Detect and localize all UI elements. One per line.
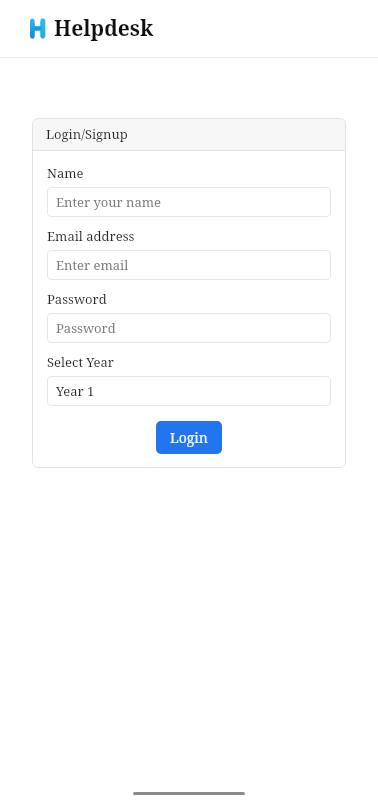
button[interactable]: Select Year (47, 376, 331, 406)
button[interactable]: Email input (47, 250, 331, 280)
staticText: Password (47, 290, 107, 308)
staticText: Login (170, 428, 208, 447)
staticText: Login/Signup (46, 125, 128, 143)
staticText: Helpdesk (54, 14, 154, 43)
staticText: Name (47, 164, 84, 182)
staticText: Year 1 (56, 382, 95, 400)
staticText: Select Year (47, 353, 114, 371)
staticText: Password (56, 319, 116, 337)
button[interactable]: Login (156, 421, 222, 454)
staticText: Email address (47, 227, 135, 245)
other: Helpdesk logo (29, 17, 46, 40)
button[interactable]: Password input (47, 313, 331, 343)
button[interactable]: Helpdesk logo (29, 14, 154, 43)
button[interactable]: Name input (47, 187, 331, 217)
staticText: Enter email (56, 256, 129, 274)
staticText: Enter your name (56, 193, 162, 211)
